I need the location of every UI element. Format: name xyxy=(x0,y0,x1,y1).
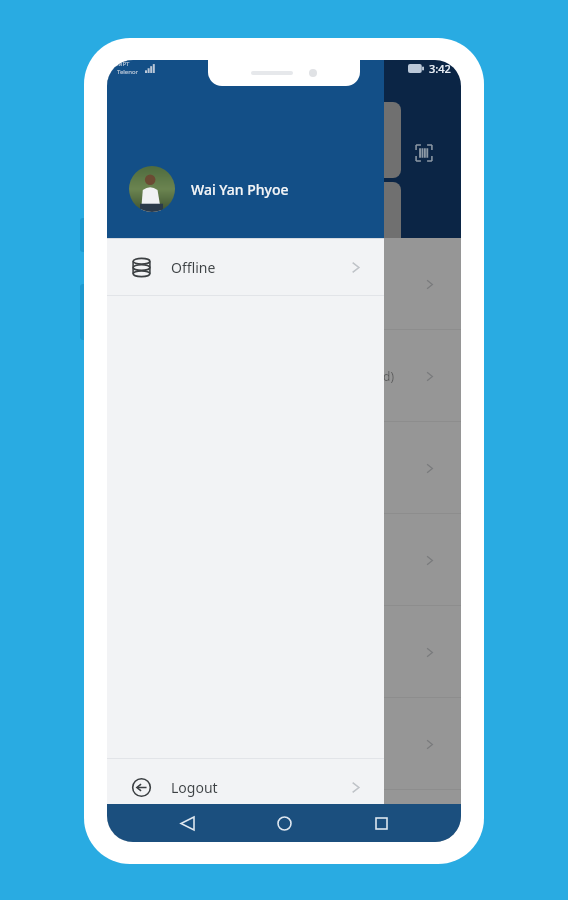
button[interactable] xyxy=(107,238,461,330)
staticText: Wai Yan Phyoe xyxy=(191,180,289,199)
staticText: Item (second) xyxy=(317,368,395,384)
button[interactable]: Logout xyxy=(107,759,384,815)
staticText: Offline xyxy=(171,258,216,277)
staticText: MPT xyxy=(117,60,130,68)
button[interactable]: Profile photo xyxy=(107,60,384,238)
button[interactable]: Item (second) xyxy=(107,330,461,422)
button[interactable] xyxy=(107,514,461,606)
other: Logout xyxy=(131,777,152,798)
button[interactable]: Offline storage xyxy=(107,239,384,295)
staticText: Telenor xyxy=(117,68,139,76)
button[interactable] xyxy=(107,422,461,514)
button[interactable] xyxy=(107,606,461,698)
other: Offline storage xyxy=(131,257,152,278)
button[interactable]: Profile photo xyxy=(129,166,175,212)
staticText: Logout xyxy=(171,778,218,797)
button[interactable] xyxy=(107,698,461,790)
button[interactable]: Back xyxy=(170,806,204,840)
staticText: 3:42 xyxy=(429,61,451,76)
button[interactable]: Home xyxy=(267,806,301,840)
button[interactable]: Recent apps xyxy=(364,806,398,840)
other: Scan barcode xyxy=(413,142,435,164)
